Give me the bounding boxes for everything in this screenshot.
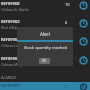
staticText: 6: [65, 20, 68, 25]
staticText: Château Margaux: [1, 63, 28, 67]
button[interactable]: OK: [39, 58, 50, 64]
staticText: REF89903: [1, 56, 20, 61]
button[interactable]: History: [79, 56, 88, 65]
staticText: REF89908: [1, 1, 20, 6]
staticText: Stock quantity reached: [24, 45, 67, 50]
staticText: Château Lafite: [1, 44, 23, 48]
staticText: Alert: [40, 31, 51, 37]
staticText: REF89907: [1, 83, 20, 88]
button[interactable]: REF89903: [0, 55, 90, 73]
staticText: Rosé d'Anjou: [1, 26, 21, 30]
button[interactable]: History: [79, 37, 88, 46]
staticText: OK: [42, 59, 47, 63]
staticText: REF89902: [1, 19, 20, 24]
staticText: ALM802: [1, 75, 17, 80]
button[interactable]: History: [79, 1, 88, 10]
staticText: 4: [65, 38, 68, 43]
button[interactable]: History: [79, 83, 88, 90]
button[interactable]: REF89907: [0, 82, 90, 90]
staticText: Château St. Martin: [1, 8, 29, 12]
button[interactable]: REF89905: [0, 36, 90, 55]
staticText: REF89905: [1, 37, 20, 42]
staticText: 10: [65, 2, 70, 7]
button[interactable]: History: [79, 19, 88, 28]
staticText: 5: [65, 84, 68, 89]
button[interactable]: REF89902: [0, 18, 90, 36]
button[interactable]: REF89908: [0, 0, 90, 18]
